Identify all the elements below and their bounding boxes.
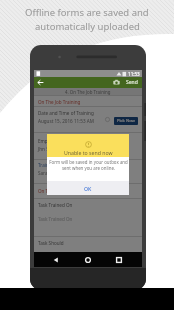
staticText: Trainer — [38, 162, 54, 168]
staticText: Send — [126, 79, 138, 86]
staticText: Employee Trained — [38, 138, 77, 144]
staticText: OK — [84, 185, 92, 192]
staticText: 11:53 — [128, 71, 140, 77]
button[interactable]: Home — [81, 253, 94, 266]
staticText: Task Trained On — [38, 202, 73, 208]
staticText: Jhn Smith — [38, 146, 59, 152]
button[interactable]: Send — [122, 77, 142, 88]
staticText: August 15, 2016 11:53 AM — [38, 118, 94, 124]
button[interactable]: Camera — [110, 77, 122, 88]
button[interactable]: OK — [74, 181, 102, 195]
staticText: 4. On The Job Training — [65, 89, 111, 95]
staticText: Unable to send now — [64, 149, 113, 156]
staticText: automatically uploaded — [35, 20, 140, 33]
button[interactable]: Pick Now — [114, 117, 138, 125]
staticText: Offline forms are saved and — [25, 6, 149, 19]
button[interactable]: Back — [34, 77, 47, 88]
staticText: Sara Gomez — [38, 170, 64, 176]
staticText: Task Should — [38, 240, 64, 246]
staticText: Date and Time of Training — [38, 110, 94, 116]
button[interactable]: Recents — [112, 253, 125, 266]
button[interactable]: Back — [49, 253, 62, 266]
staticText: On The Job Training — [38, 99, 81, 105]
staticText: Form will be saved in your outbox and se… — [49, 159, 128, 172]
staticText: Pick Now — [117, 118, 135, 124]
staticText: Task Trained On — [38, 216, 73, 222]
staticText: On The Job Training — [38, 188, 81, 194]
